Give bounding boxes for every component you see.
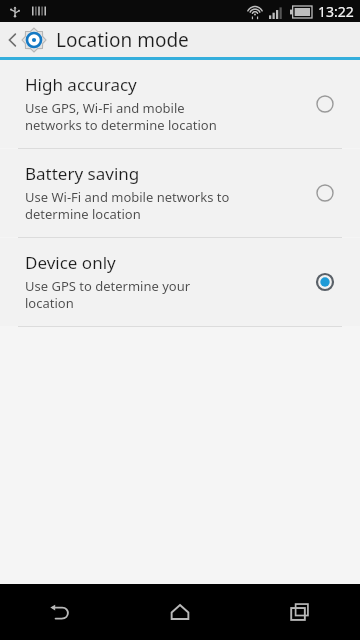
button[interactable]: Battery saving xyxy=(0,149,360,237)
staticText: Device only xyxy=(25,251,116,274)
button[interactable]: Recent apps xyxy=(240,584,360,640)
staticText: Location mode xyxy=(56,27,189,53)
staticText: Use GPS, Wi-Fi and mobile networks to de… xyxy=(25,99,217,134)
button[interactable]: Select High accuracy xyxy=(308,87,342,121)
staticText: Use Wi-Fi and mobile networks to determi… xyxy=(25,188,230,223)
button[interactable]: Home xyxy=(120,584,240,640)
button[interactable]: Select Battery saving xyxy=(308,176,342,210)
staticText: Battery saving xyxy=(25,162,140,185)
button[interactable]: Back xyxy=(0,584,120,640)
button[interactable]: Device only selected xyxy=(308,265,342,299)
staticText: Use GPS to determine your location xyxy=(25,277,191,312)
staticText: High accuracy xyxy=(25,73,137,96)
button[interactable]: Navigate up, Location mode xyxy=(0,27,360,53)
staticText: 13:22 xyxy=(318,2,354,21)
button[interactable]: Device only xyxy=(0,238,360,326)
button[interactable]: High accuracy xyxy=(0,60,360,148)
